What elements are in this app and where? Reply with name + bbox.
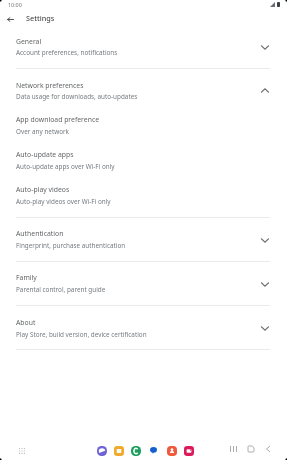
button[interactable]: App (97, 446, 107, 456)
staticText: General (16, 37, 42, 46)
staticText: Parental control, parent guide (16, 285, 106, 294)
button[interactable]: App (131, 446, 141, 456)
staticText: Authentication (16, 229, 64, 238)
button[interactable]: Collapse (256, 81, 274, 99)
staticText: Network preferences (16, 81, 84, 90)
button[interactable] (0, 180, 287, 206)
staticText: App download preference (16, 115, 100, 124)
button[interactable]: Messages (150, 447, 157, 454)
button[interactable] (0, 313, 287, 339)
button[interactable]: Expand (256, 38, 274, 56)
staticText: Account preferences, notifications (16, 48, 118, 57)
button[interactable] (0, 268, 287, 294)
button[interactable] (0, 76, 287, 101)
button[interactable]: All apps (13, 442, 31, 460)
staticText: Auto-update apps (16, 150, 74, 159)
staticText: Data usage for downloads, auto-updates (16, 92, 138, 101)
button[interactable] (0, 145, 287, 171)
button[interactable]: Recents (226, 442, 240, 456)
button[interactable]: App (167, 446, 177, 456)
staticText: Family (16, 273, 37, 282)
staticText: 10:00 (8, 1, 22, 8)
button[interactable]: Back (1, 10, 19, 28)
staticText: Auto-update apps over Wi-Fi only (16, 162, 115, 171)
button[interactable]: Expand (256, 275, 274, 293)
button[interactable]: Expand (256, 231, 274, 249)
staticText: Play Store, build version, device certif… (16, 330, 147, 339)
button[interactable]: Back (261, 442, 275, 456)
staticText: About (16, 318, 36, 327)
staticText: Settings (26, 13, 55, 23)
staticText: Over any network (16, 127, 70, 136)
button[interactable] (0, 110, 287, 136)
button[interactable] (0, 32, 287, 57)
staticText: Fingerprint, purchase authentication (16, 241, 126, 250)
button[interactable]: Expand (256, 319, 274, 337)
button[interactable]: Home (244, 442, 258, 456)
staticText: Auto-play videos (16, 185, 70, 194)
staticText: Auto-play videos over Wi-Fi only (16, 197, 111, 206)
button[interactable]: App (184, 446, 194, 456)
button[interactable]: App (114, 446, 124, 456)
button[interactable] (0, 224, 287, 250)
